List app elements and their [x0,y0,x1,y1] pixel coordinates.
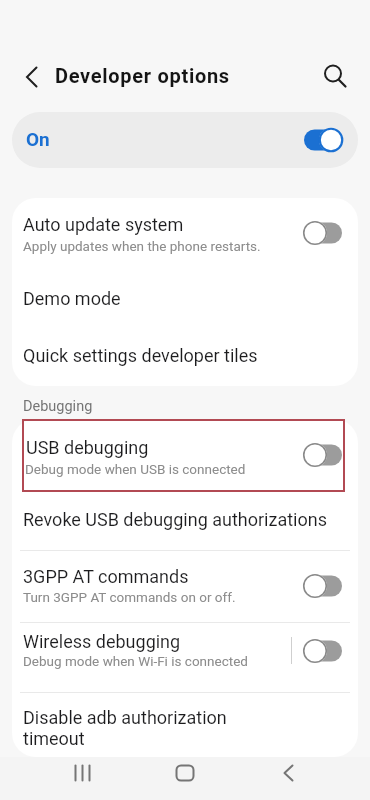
button[interactable] [12,693,358,757]
staticText: Debugging [23,398,93,415]
staticText: Developer options [55,64,230,87]
button[interactable] [303,441,345,469]
staticText: Apply updates when the phone restarts. [23,238,261,254]
staticText: Quick settings developer tiles [23,345,258,366]
button[interactable] [14,57,54,97]
button[interactable] [12,623,358,692]
staticText: Revoke USB debugging authorizations [23,509,327,530]
button[interactable] [12,268,358,330]
button[interactable] [62,752,104,794]
staticText: Turn 3GPP AT commands on or off. [23,589,236,605]
button[interactable] [313,53,357,97]
staticText: 3GPP AT commands [23,566,189,587]
staticText: Debug mode when USB is connected [25,461,246,477]
button[interactable] [164,752,206,794]
button[interactable] [12,551,358,622]
staticText: USB debugging [26,437,149,458]
button[interactable] [267,752,309,794]
staticText: Disable adb authorization [23,707,227,728]
button[interactable] [303,126,345,154]
button[interactable] [12,112,358,168]
button[interactable] [12,198,358,268]
staticText: Auto update system [23,214,184,235]
staticText: Debug mode when Wi-Fi is connected [23,653,248,669]
staticText: Demo mode [23,288,121,309]
staticText: Wireless debugging [23,631,181,652]
button[interactable] [303,219,345,247]
staticText: On [26,128,50,150]
button[interactable] [303,637,345,665]
button[interactable] [12,330,358,386]
button[interactable] [12,492,358,550]
button[interactable] [303,572,345,600]
staticText: timeout [23,728,85,749]
button[interactable] [12,419,358,492]
